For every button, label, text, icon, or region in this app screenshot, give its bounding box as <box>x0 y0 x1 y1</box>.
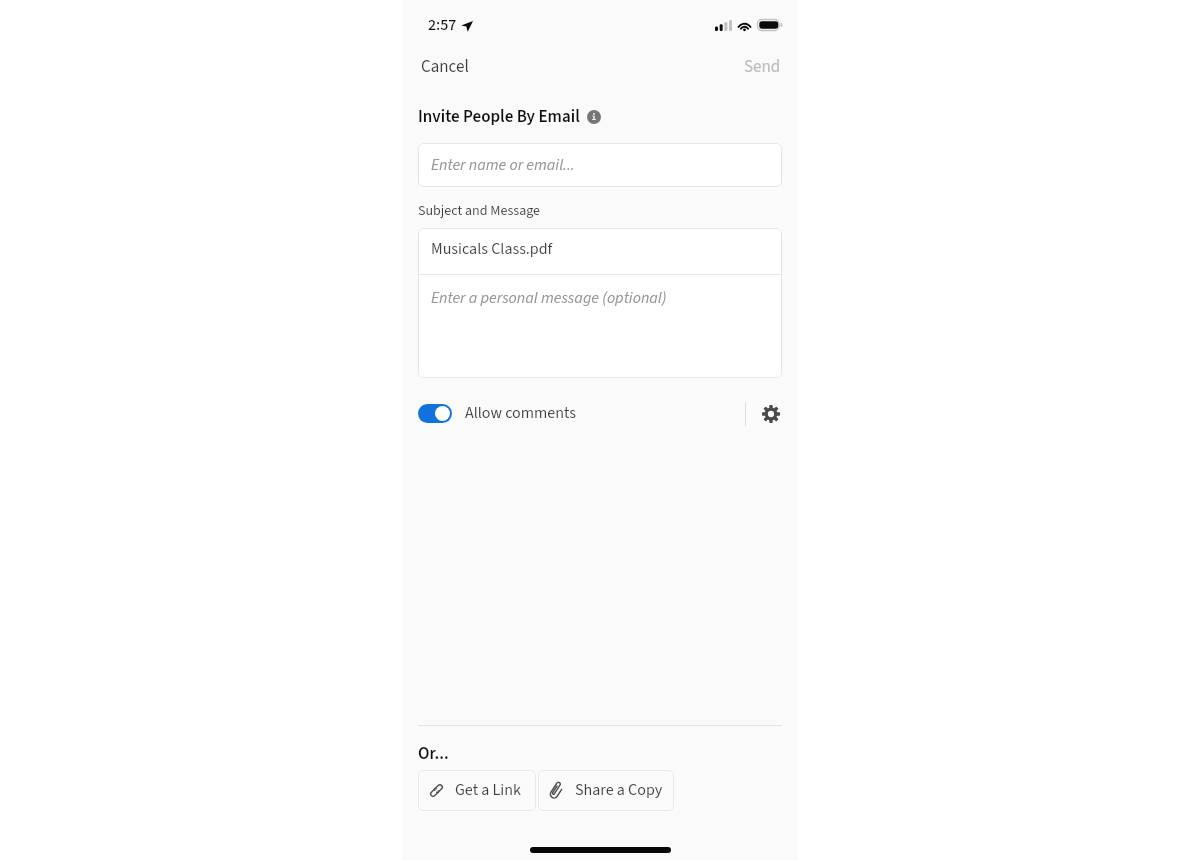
staticText: Enter name or email... <box>431 154 575 177</box>
staticText: Musicals Class.pdf <box>431 238 553 261</box>
staticText: Share a Copy <box>575 779 663 802</box>
button[interactable]: Get a Link <box>418 770 536 811</box>
staticText: Cancel <box>421 55 469 75</box>
staticText: Allow comments <box>465 402 576 425</box>
button[interactable]: Enter a personal message (optional) <box>418 275 782 378</box>
staticText: Get a Link <box>455 779 521 802</box>
staticText: Invite People By Email <box>418 105 580 129</box>
staticText: Or... <box>418 742 449 766</box>
staticText: 2:57 <box>428 14 457 37</box>
staticText: Send <box>744 55 781 75</box>
staticText: Enter a personal message (optional) <box>431 287 667 310</box>
button[interactable]: Send <box>727 48 798 82</box>
staticText: Subject and Message <box>418 201 541 221</box>
button[interactable]: Allow comments <box>418 402 576 425</box>
button[interactable]: Cancel <box>402 48 488 82</box>
button[interactable]: Musicals Class.pdf <box>418 228 782 274</box>
button[interactable]: Enter name or email... <box>418 143 782 187</box>
button[interactable]: Settings <box>757 400 785 428</box>
button[interactable]: Share a Copy <box>538 770 674 811</box>
button[interactable]: Info <box>585 108 603 126</box>
